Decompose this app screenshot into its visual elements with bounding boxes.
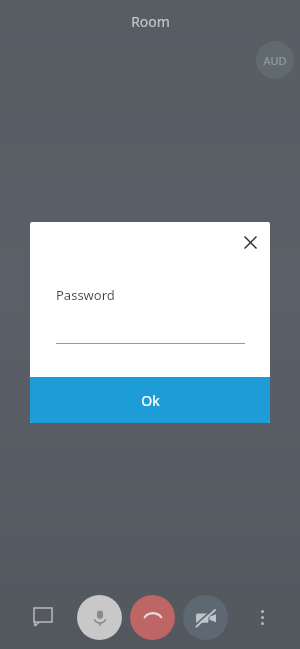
button[interactable]: More options — [240, 595, 284, 639]
button[interactable]: Close — [236, 228, 264, 256]
staticText: Room — [131, 12, 170, 31]
button[interactable]: Participant AUD — [256, 41, 294, 79]
staticText: Ok — [141, 391, 160, 410]
button[interactable]: Ok — [30, 377, 270, 423]
button[interactable]: Hang up — [130, 595, 175, 640]
button[interactable]: Turn camera off — [183, 595, 228, 640]
staticText: Password — [56, 286, 115, 304]
button[interactable]: Chat — [21, 595, 65, 639]
button[interactable]: Mute microphone — [77, 595, 122, 640]
staticText: AUD — [263, 53, 287, 68]
